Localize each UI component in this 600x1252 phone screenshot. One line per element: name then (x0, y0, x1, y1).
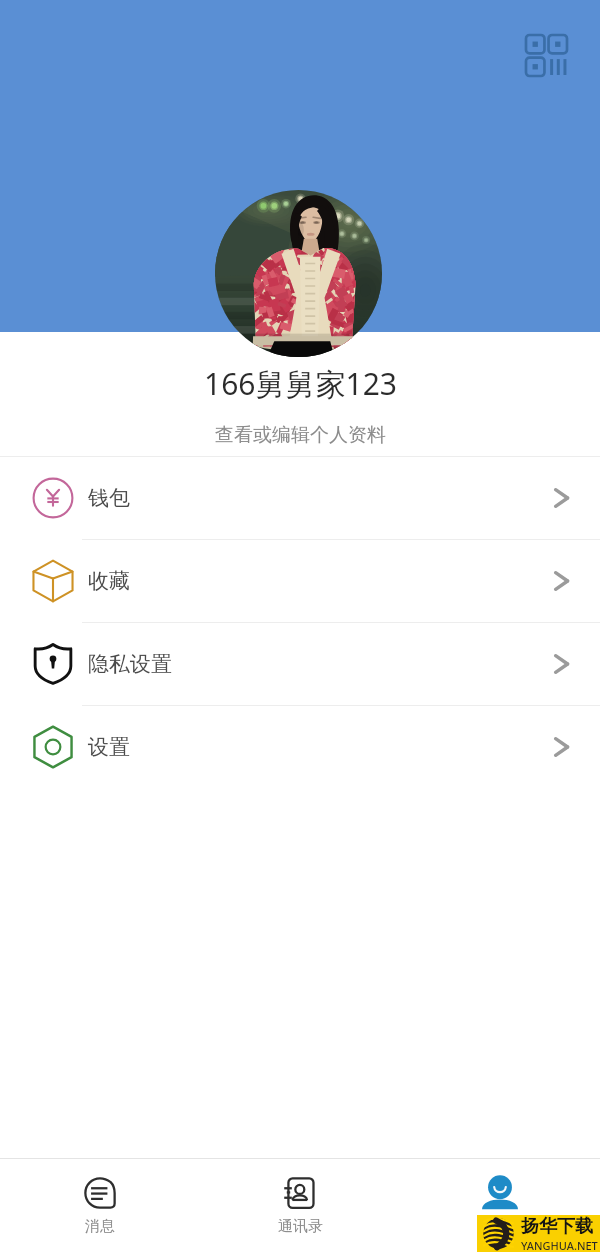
staticText: 收藏 (88, 568, 130, 594)
button[interactable]: 隐私设置 (0, 623, 600, 705)
staticText: 通讯录 (278, 1217, 323, 1236)
staticText: 隐私设置 (88, 651, 172, 677)
button[interactable]: 我 (400, 1159, 600, 1236)
button[interactable]: 消息 (0, 1159, 200, 1236)
staticText: 查看或编辑个人资料 (215, 423, 386, 447)
staticText: 设置 (88, 734, 130, 760)
button[interactable]: 设置 (0, 706, 600, 788)
staticText: 消息 (85, 1217, 115, 1236)
staticText: 我 (493, 1217, 508, 1236)
staticText: 扬华下载 (521, 1215, 593, 1238)
button[interactable]: 钱包 (0, 457, 600, 539)
staticText: YANGHUA.NET (521, 1238, 598, 1252)
button[interactable]: 查看或编辑个人资料 (0, 423, 600, 447)
button[interactable]: 收藏 (0, 540, 600, 622)
staticText: 166舅舅家123 (204, 363, 397, 404)
staticText: 钱包 (88, 485, 130, 511)
button[interactable]: Profile photo (215, 190, 382, 357)
button[interactable]: 通讯录 (200, 1159, 400, 1236)
button[interactable]: Scan QR code (514, 23, 578, 87)
